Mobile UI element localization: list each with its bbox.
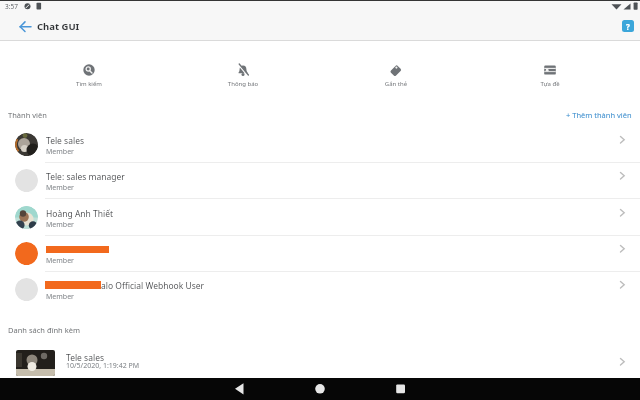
staticText: Thành viên [8, 110, 47, 120]
button[interactable]: Tele: sales manager [0, 162, 640, 198]
staticText: alo Official Webhook User [101, 280, 205, 292]
button[interactable]: ? [622, 20, 634, 32]
staticText: Tele sales [66, 352, 105, 364]
staticText: Tựa đề [512, 80, 588, 88]
staticText: + Thêm thành viên [566, 110, 632, 120]
button[interactable] [12, 16, 34, 38]
staticText: Danh sách đính kèm [8, 325, 80, 335]
staticText: Chat GUI [37, 20, 80, 33]
button[interactable]: Gắn thẻ [358, 52, 434, 94]
staticText: 3:57 [5, 2, 18, 11]
staticText: 10/5/2020, 1:19:42 PM [66, 361, 140, 371]
staticText: Tele: sales manager [46, 171, 125, 183]
staticText: Member [46, 183, 74, 193]
staticText: Tele sales [46, 135, 85, 147]
button[interactable]: Tựa đề [512, 52, 588, 94]
button[interactable]: Thông báo [205, 52, 281, 94]
button[interactable]: alo Official Webhook User [0, 271, 640, 307]
button[interactable]: Hoàng Anh Thiết [0, 199, 640, 235]
staticText: Member [46, 220, 74, 230]
button[interactable]: + Thêm thành viên [482, 108, 632, 122]
staticText: ? [626, 21, 630, 32]
staticText: Gắn thẻ [358, 80, 434, 88]
staticText: Thông báo [205, 80, 281, 88]
button[interactable]: Tele sales [0, 340, 640, 377]
button[interactable] [384, 378, 416, 400]
button[interactable] [304, 378, 336, 400]
staticText: Member [46, 256, 74, 266]
staticText: Tìm kiếm [51, 80, 127, 88]
staticText: Member [46, 147, 74, 157]
staticText: Hoàng Anh Thiết [46, 208, 114, 220]
button[interactable]: Tele sales [0, 126, 640, 162]
button[interactable]: Tìm kiếm [51, 52, 127, 94]
button[interactable] [224, 378, 256, 400]
button[interactable]: Member [0, 235, 640, 271]
staticText: Member [46, 292, 74, 302]
